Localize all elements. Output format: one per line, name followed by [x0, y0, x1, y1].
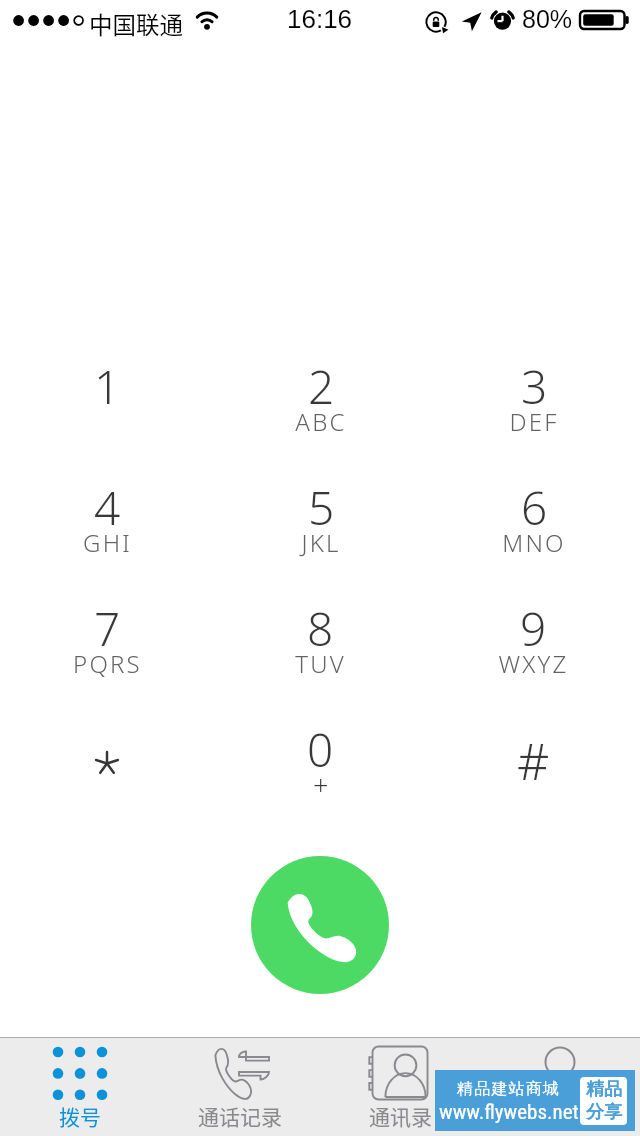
staticText: 3 — [521, 355, 548, 418]
button[interactable]: 通讯录 — [320, 1038, 480, 1136]
staticText: TUV — [295, 647, 346, 680]
staticText: www.flywebs.net — [439, 1100, 579, 1125]
staticText: JKL — [301, 526, 341, 559]
staticText: + — [313, 766, 329, 803]
staticText: 8 — [307, 597, 334, 660]
button[interactable]: 5 — [214, 468, 427, 589]
button[interactable]: Call — [251, 856, 389, 994]
button[interactable]: 4 — [0, 468, 214, 589]
staticText: 分享 — [586, 1101, 622, 1124]
button[interactable]: 7 — [0, 589, 214, 710]
button[interactable]: 通话记录 — [160, 1038, 320, 1136]
staticText: 9 — [520, 597, 547, 660]
staticText: 7 — [94, 597, 121, 660]
button[interactable]: 0 — [214, 710, 427, 831]
staticText: # — [517, 727, 550, 795]
staticText: 精品建站商城 — [457, 1079, 561, 1099]
staticText: 0 — [307, 718, 334, 781]
button[interactable]: 8 — [214, 589, 427, 710]
button[interactable]: 6 — [427, 468, 640, 589]
staticText: 拨号 — [59, 1101, 101, 1131]
button[interactable]: 9 — [427, 589, 640, 710]
button[interactable]: 2 — [214, 347, 427, 468]
button[interactable]: # — [427, 710, 640, 831]
staticText: 通话记录 — [198, 1101, 282, 1131]
button[interactable]: 拨号 — [0, 1038, 160, 1136]
staticText: PQRS — [73, 647, 142, 680]
staticText: 80% — [522, 5, 573, 33]
staticText: 4 — [94, 476, 121, 539]
staticText: 16:16 — [287, 4, 353, 33]
staticText: MNO — [502, 526, 566, 559]
staticText: 中国联通 — [89, 7, 183, 41]
staticText: 6 — [521, 476, 548, 539]
button[interactable] — [0, 710, 214, 831]
staticText: ABC — [295, 405, 347, 438]
staticText: WXYZ — [498, 647, 569, 680]
staticText: 精品 — [586, 1078, 622, 1101]
button[interactable]: 3 — [427, 347, 640, 468]
staticText: GHI — [83, 526, 132, 559]
button[interactable]: 收藏 — [480, 1038, 640, 1136]
staticText: 1 — [94, 355, 121, 418]
staticText: 通讯录 — [369, 1101, 432, 1131]
staticText: 收藏 — [539, 1101, 581, 1131]
button[interactable]: 1 — [0, 347, 214, 468]
staticText: 5 — [308, 476, 335, 539]
staticText: 2 — [308, 355, 335, 418]
staticText: DEF — [509, 405, 559, 438]
